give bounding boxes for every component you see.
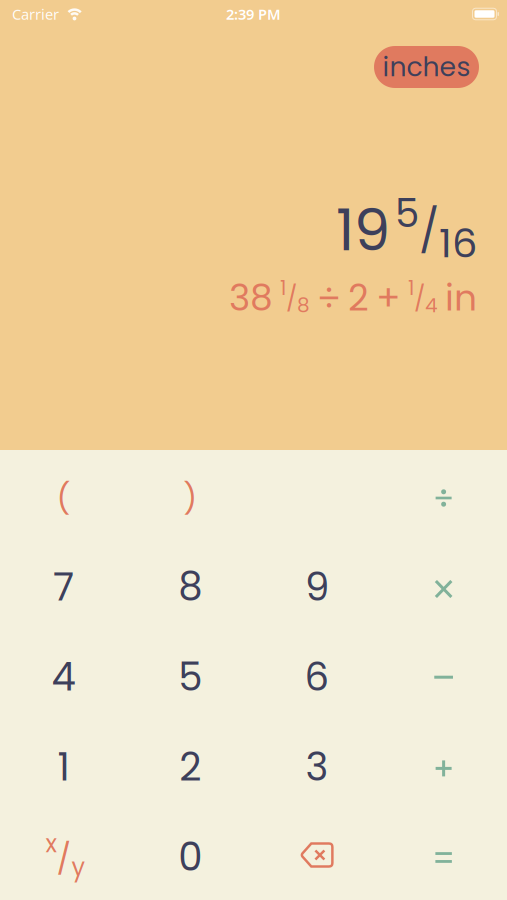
button[interactable]: 7 (0, 540, 127, 630)
staticText: 0 (178, 830, 202, 884)
button[interactable]: inches (374, 46, 479, 88)
button[interactable]: Add (380, 720, 507, 810)
staticText: 3 (305, 740, 328, 794)
button[interactable]: Subtract (380, 630, 507, 720)
staticText: inches (382, 48, 470, 86)
staticText: ( (56, 476, 70, 519)
staticText: 4 (51, 650, 75, 704)
button[interactable]: Fraction (0, 810, 127, 900)
button[interactable]: Equals (380, 810, 507, 900)
button[interactable]: 8 (127, 540, 254, 630)
button[interactable]: 6 (253, 630, 380, 720)
staticText: 38 1/8 ÷ 2 + 1/4 in (229, 273, 477, 322)
button[interactable]: 9 (253, 540, 380, 630)
button[interactable]: 3 (253, 720, 380, 810)
staticText: 6 (304, 650, 329, 704)
button[interactable]: 4 (0, 630, 127, 720)
button[interactable]: ( (0, 450, 127, 540)
staticText: 2 (179, 740, 201, 794)
staticText: 7 (53, 560, 74, 614)
staticText: Carrier (12, 4, 59, 24)
staticText: 19 5/16 (336, 187, 477, 270)
staticText: ) (183, 476, 197, 519)
button[interactable]: Multiply (380, 540, 507, 630)
button[interactable]: Delete (253, 810, 380, 900)
button[interactable]: 2 (127, 720, 254, 810)
button[interactable]: Divide (380, 450, 507, 540)
staticText: x/y (45, 827, 85, 883)
staticText: 2:39 PM (226, 4, 281, 24)
staticText: 9 (305, 560, 329, 614)
button[interactable]: ) (127, 450, 254, 540)
staticText: 1 (57, 740, 69, 794)
button[interactable]: 1 (0, 720, 127, 810)
staticText: 5 (178, 650, 202, 704)
button[interactable]: 5 (127, 630, 254, 720)
button[interactable]: 0 (127, 810, 254, 900)
staticText: 8 (178, 560, 202, 614)
